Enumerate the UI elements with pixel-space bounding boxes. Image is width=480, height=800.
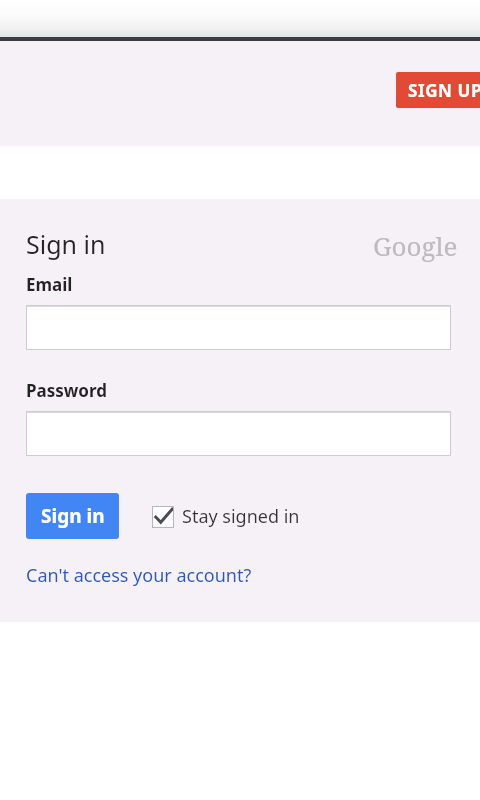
staticText: SIGN UP [408,79,480,102]
staticText: Sign in [41,503,105,529]
staticText: Sign in [26,227,106,261]
button[interactable] [26,305,451,350]
button[interactable]: Stay signed in [152,504,300,529]
button[interactable]: SIGN UP [396,72,480,108]
button[interactable]: Can't access your account? [26,563,252,588]
staticText: Can't access your account? [26,563,252,588]
staticText: Password [26,379,107,402]
button[interactable]: Sign in [26,493,119,539]
staticText: Email [26,273,73,296]
button[interactable] [26,411,451,456]
staticText: Stay signed in [182,504,300,529]
staticText: Google [373,228,458,263]
